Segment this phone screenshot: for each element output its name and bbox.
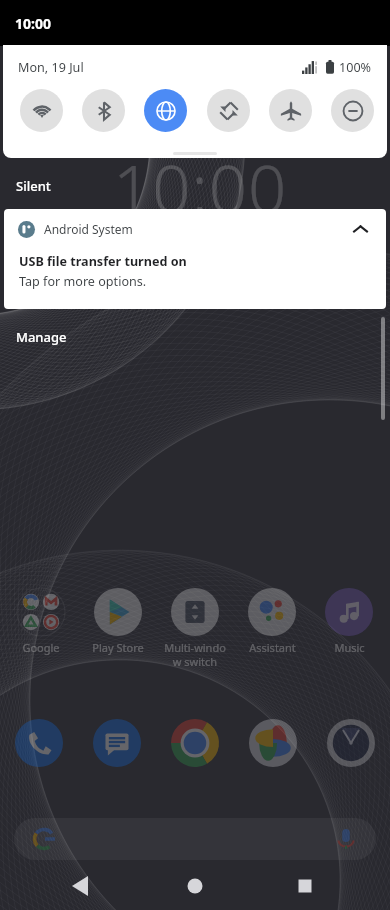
button[interactable]: Auto rotate	[207, 89, 250, 132]
button[interactable]: Phone	[14, 718, 64, 768]
button[interactable]: Chrome	[170, 718, 220, 768]
staticText: 10:00	[15, 14, 51, 33]
button[interactable]: Do not disturb	[331, 89, 374, 132]
button[interactable]: Search	[14, 818, 376, 860]
button[interactable]: Android System	[4, 209, 386, 309]
button[interactable]: Home	[173, 866, 217, 910]
button[interactable]: Music	[312, 588, 386, 655]
staticText: Tap for more options.	[19, 273, 147, 290]
staticText: Assistant	[249, 640, 296, 655]
staticText: Android System	[44, 221, 133, 237]
button[interactable]: Multi-windo w switch	[158, 588, 232, 669]
staticText: 100%	[339, 59, 372, 76]
button[interactable]: Recents	[283, 866, 327, 910]
staticText: Play Store	[92, 640, 144, 655]
button[interactable]: Clock	[326, 718, 376, 768]
staticText: 10:00	[113, 141, 288, 232]
button[interactable]: Collapse	[346, 215, 374, 243]
button[interactable]: Photos	[248, 718, 298, 768]
staticText: Silent	[16, 177, 51, 195]
button[interactable]: Google	[4, 588, 78, 655]
staticText: Music	[334, 640, 365, 655]
button[interactable]: Bluetooth	[82, 89, 125, 132]
button[interactable]: Wi-Fi	[20, 89, 63, 132]
button[interactable]: Internet	[144, 89, 187, 132]
button[interactable]: Manage	[16, 328, 67, 346]
staticText: USB file transfer turned on	[19, 253, 187, 270]
button[interactable]: Play Store	[81, 588, 155, 655]
staticText: Multi-windo w switch	[164, 640, 226, 669]
button[interactable]: Airplane mode	[269, 89, 312, 132]
button[interactable]: Back	[58, 866, 102, 910]
button[interactable]: Messages	[92, 718, 142, 768]
staticText: Mon, 19 Jul	[18, 59, 84, 76]
button[interactable]: Assistant	[235, 588, 309, 655]
staticText: Google	[22, 640, 60, 655]
